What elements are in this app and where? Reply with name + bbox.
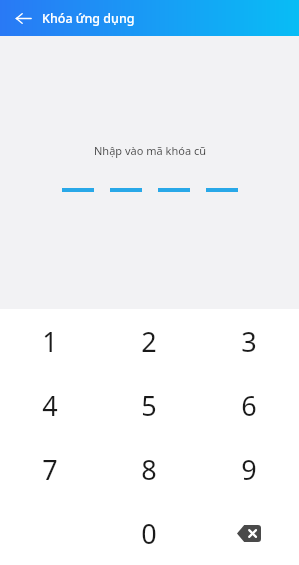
button[interactable]: 0 — [99, 501, 199, 565]
staticText: 3 — [241, 323, 257, 360]
staticText: 4 — [42, 387, 58, 424]
button[interactable]: 4 — [0, 373, 99, 437]
staticText: Nhập vào mã khóa cũ — [94, 143, 206, 158]
button[interactable]: 5 — [99, 373, 199, 437]
button[interactable]: 7 — [0, 437, 99, 501]
button[interactable]: 8 — [99, 437, 199, 501]
staticText: 5 — [141, 387, 157, 424]
button[interactable]: 3 — [199, 309, 299, 373]
button[interactable]: 2 — [99, 309, 199, 373]
staticText: 2 — [141, 323, 157, 360]
staticText: 1 — [42, 323, 58, 360]
staticText: 9 — [241, 451, 257, 488]
staticText: 7 — [42, 451, 58, 488]
button[interactable]: 6 — [199, 373, 299, 437]
button[interactable]: Backspace — [199, 501, 299, 565]
button[interactable]: Back — [10, 5, 36, 31]
button[interactable]: 1 — [0, 309, 99, 373]
staticText: 8 — [141, 451, 157, 488]
button[interactable]: 9 — [199, 437, 299, 501]
staticText: 0 — [141, 515, 157, 552]
staticText: Khóa ứng dụng — [42, 10, 135, 27]
staticText: 6 — [241, 387, 257, 424]
